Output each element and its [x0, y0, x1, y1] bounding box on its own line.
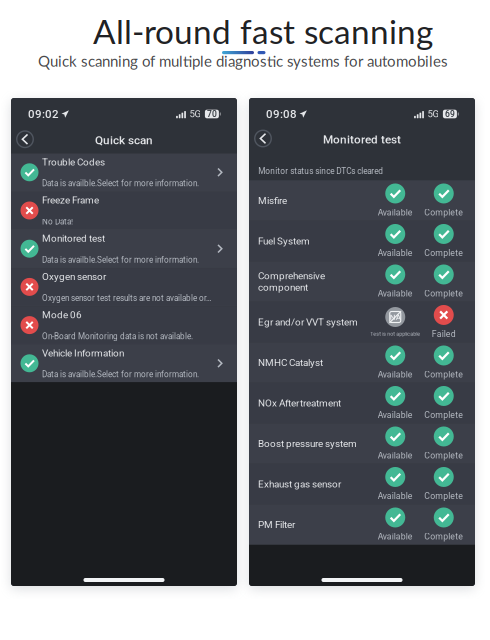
staticText: Test is not applicable [370, 331, 420, 337]
staticText: Oxygen sensor test results are not avail… [42, 293, 211, 303]
staticText: Oxygen sensor [42, 271, 106, 282]
staticText: Complete [424, 248, 463, 258]
button[interactable]: Oxygen sensor [11, 268, 237, 306]
staticText: Complete [424, 207, 463, 218]
staticText: Quick scan [95, 133, 153, 147]
staticText: Complete [424, 450, 463, 461]
staticText: Available [378, 248, 413, 258]
staticText: All-round fast scanning [93, 11, 433, 51]
staticText: NOx Aftertreatment [258, 397, 341, 409]
staticText: Monitored test [42, 233, 105, 244]
staticText: Monitored test [323, 133, 401, 146]
staticText: Available [378, 207, 413, 218]
staticText: Fuel System [258, 235, 310, 247]
staticText: Exhaust gas sensor [258, 478, 341, 490]
staticText: Failed [432, 329, 456, 339]
staticText: Available [378, 450, 413, 461]
staticText: Available [378, 491, 413, 501]
staticText: Boost pressure system [258, 438, 357, 449]
staticText: PM Filter [258, 519, 295, 530]
staticText: 5G [189, 108, 201, 120]
staticText: Misfire [258, 195, 287, 206]
button[interactable]: Back [13, 127, 37, 151]
staticText: Complete [424, 531, 463, 542]
staticText: Available [378, 531, 413, 542]
button[interactable]: Freeze Frame [11, 192, 237, 229]
button[interactable]: Trouble Codes [11, 153, 237, 191]
staticText: Complete [424, 491, 463, 501]
staticText: 09:08 [266, 107, 297, 121]
staticText: Vehicle Information [42, 347, 124, 359]
staticText: On-Board Monitoring data is not availabl… [42, 332, 193, 341]
staticText: NA [390, 312, 401, 322]
button[interactable]: Vehicle Information [11, 344, 237, 382]
button[interactable]: Mode 06 [11, 306, 237, 344]
staticText: Available [378, 288, 413, 299]
staticText: Trouble Codes [42, 156, 105, 168]
staticText: Comprehensive component [258, 270, 325, 293]
button[interactable]: Monitored test [11, 230, 237, 267]
staticText: Available [378, 369, 413, 380]
staticText: 69 [445, 109, 455, 119]
staticText: 70 [207, 109, 217, 119]
staticText: Mode 06 [42, 309, 82, 321]
staticText: Complete [424, 369, 463, 380]
staticText: Available [378, 410, 413, 420]
staticText: 5G [427, 108, 439, 120]
staticText: Monitor status since DTCs cleared [258, 166, 383, 176]
staticText: Egr and/or VVT system [258, 316, 358, 328]
staticText: Complete [424, 288, 463, 299]
staticText: Quick scanning of multiple diagnostic sy… [38, 52, 448, 70]
staticText: Data is availble.Select for more informa… [42, 370, 199, 379]
button[interactable]: Back [251, 126, 275, 150]
staticText: 09:02 [28, 107, 59, 121]
staticText: Complete [424, 410, 463, 420]
staticText: NMHC Catalyst [258, 357, 323, 368]
staticText: Freeze Frame [42, 194, 99, 206]
staticText: Data is availble.Select for more informa… [42, 179, 199, 188]
staticText: No Data! [42, 217, 73, 226]
staticText: Data is availble.Select for more informa… [42, 255, 199, 265]
